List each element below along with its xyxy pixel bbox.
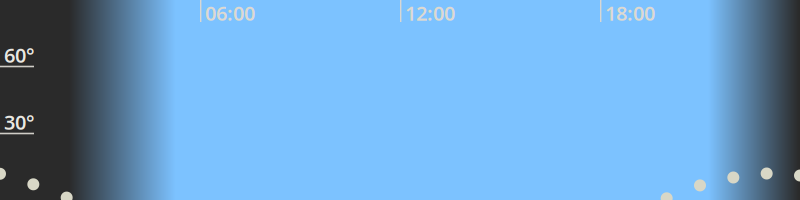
staticText: 06:00 — [205, 0, 255, 26]
staticText: 18:00 — [605, 0, 655, 26]
staticText: 12:00 — [405, 0, 455, 26]
staticText: 60° — [4, 42, 35, 68]
staticText: 30° — [4, 109, 35, 135]
